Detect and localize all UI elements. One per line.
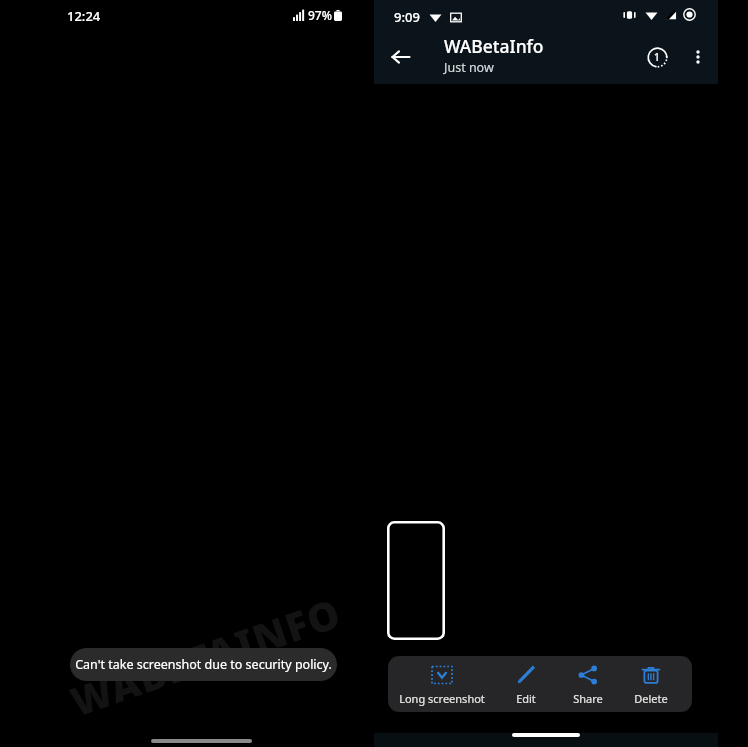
staticText: 97% [308,7,332,23]
button[interactable]: Back [380,36,422,78]
button[interactable]: Edit [495,656,557,712]
staticText: 9:09 [394,8,420,26]
button[interactable]: WABetaInfo [444,34,544,76]
button[interactable]: View once [637,37,677,77]
button[interactable]: Screenshot preview [387,521,445,640]
button[interactable]: Can't take screenshot due to security po… [70,648,337,681]
staticText: WABETAINFO [63,584,348,728]
staticText: Delete [634,691,668,706]
staticText: Just now [444,59,494,76]
button[interactable]: Share [557,656,619,712]
button[interactable]: Delete [619,656,683,712]
staticText: Can't take screenshot due to security po… [75,656,332,673]
staticText: Edit [516,691,536,706]
staticText: 12:24 [67,7,101,25]
button[interactable]: More options [678,37,718,77]
button[interactable]: Long screenshot [388,656,495,712]
staticText: Long screenshot [399,691,485,706]
staticText: Share [573,691,603,706]
staticText: WABetaInfo [444,34,544,58]
staticText: 1 [654,50,660,64]
